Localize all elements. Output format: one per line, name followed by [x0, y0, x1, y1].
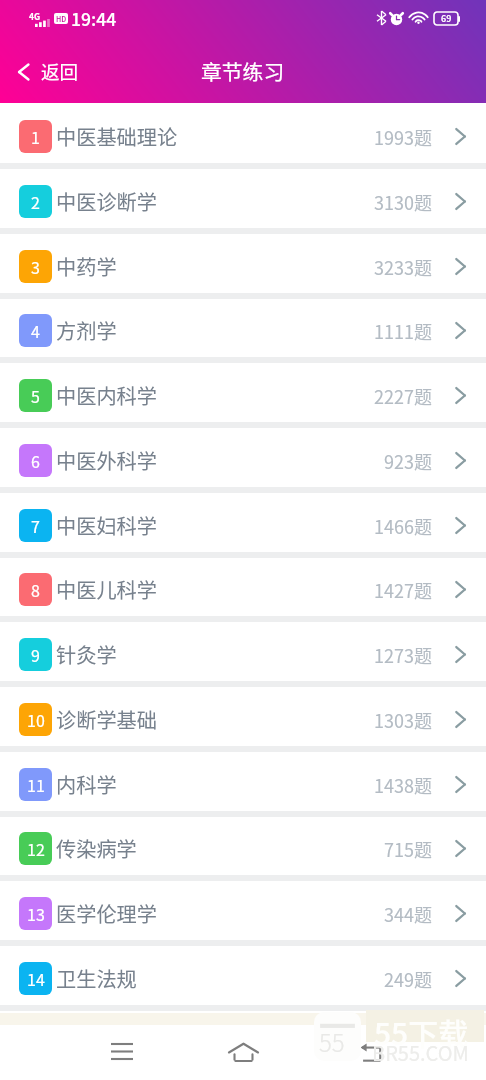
- button[interactable]: 13: [0, 881, 486, 946]
- staticText: 针灸学: [56, 640, 117, 669]
- staticText: 中药学: [56, 252, 117, 281]
- staticText: 1427题: [374, 577, 432, 603]
- button[interactable]: Home: [213, 1025, 273, 1080]
- staticText: 249题: [384, 966, 432, 992]
- button[interactable]: Recent apps: [92, 1025, 152, 1080]
- staticText: 13: [27, 902, 45, 925]
- staticText: 1303题: [374, 707, 432, 733]
- button[interactable]: 12: [0, 816, 486, 881]
- staticText: 1: [31, 125, 40, 148]
- button[interactable]: 11: [0, 752, 486, 817]
- staticText: 卫生法规: [56, 964, 137, 993]
- button[interactable]: Back: [341, 1025, 401, 1080]
- staticText: 中医儿科学: [56, 575, 157, 604]
- staticText: 9: [31, 643, 40, 666]
- staticText: 8: [31, 578, 40, 601]
- staticText: 19:44: [71, 6, 117, 31]
- staticText: 2: [31, 190, 40, 213]
- staticText: 14: [27, 967, 45, 990]
- staticText: 12: [27, 837, 45, 860]
- button[interactable]: 9: [0, 622, 486, 687]
- staticText: 中医外科学: [56, 446, 157, 475]
- staticText: 3233题: [374, 254, 432, 280]
- staticText: 医学伦理学: [56, 899, 157, 928]
- staticText: 1993题: [374, 124, 432, 150]
- staticText: 7: [31, 514, 40, 537]
- staticText: 1273题: [374, 642, 432, 668]
- staticText: 中医内科学: [56, 381, 157, 410]
- staticText: 923题: [384, 448, 432, 474]
- button[interactable]: 6: [0, 428, 486, 493]
- staticText: 11: [27, 773, 45, 796]
- staticText: 10: [27, 708, 45, 731]
- staticText: 344题: [384, 901, 432, 927]
- staticText: 内科学: [56, 770, 117, 799]
- staticText: 3130题: [374, 189, 432, 215]
- staticText: 传染病学: [56, 834, 137, 863]
- staticText: 4: [31, 319, 40, 342]
- staticText: BR55.COM: [372, 1038, 469, 1067]
- button[interactable]: 返回: [0, 48, 91, 95]
- staticText: 章节练习: [201, 56, 285, 86]
- staticText: 2227题: [374, 383, 432, 409]
- staticText: 55: [319, 1024, 345, 1059]
- button[interactable]: 3: [0, 234, 486, 299]
- staticText: 中医基础理论: [56, 122, 178, 151]
- staticText: 4G: [29, 10, 41, 22]
- staticText: 中医诊断学: [56, 187, 157, 216]
- staticText: 诊断学基础: [56, 705, 157, 734]
- button[interactable]: 8: [0, 557, 486, 622]
- staticText: 方剂学: [56, 316, 117, 345]
- button[interactable]: 5: [0, 363, 486, 428]
- button[interactable]: 2: [0, 169, 486, 234]
- staticText: 1466题: [374, 513, 432, 539]
- staticText: 6: [31, 449, 40, 472]
- staticText: HD: [56, 14, 67, 24]
- staticText: 1111题: [374, 318, 432, 344]
- staticText: 1438题: [374, 772, 432, 798]
- staticText: 5: [31, 384, 40, 407]
- button[interactable]: 1: [0, 104, 486, 169]
- button[interactable]: 7: [0, 493, 486, 558]
- staticText: 55下载: [374, 1010, 469, 1053]
- button[interactable]: 10: [0, 687, 486, 752]
- button[interactable]: 14: [0, 946, 486, 1011]
- staticText: 3: [31, 255, 40, 278]
- staticText: 69: [441, 12, 452, 25]
- staticText: 返回: [41, 58, 79, 85]
- staticText: 715题: [384, 836, 432, 862]
- staticText: 中医妇科学: [56, 511, 157, 540]
- button[interactable]: 4: [0, 298, 486, 363]
